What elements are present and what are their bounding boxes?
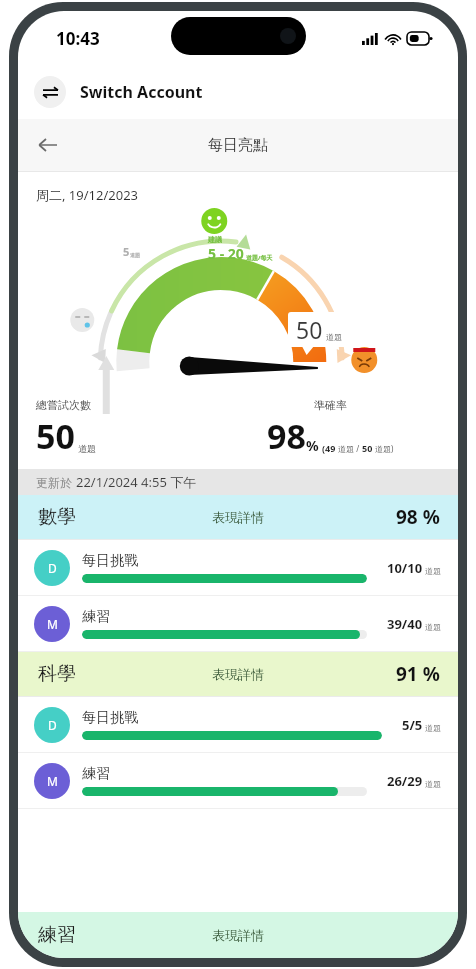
staticText: 每日挑戰: [82, 709, 138, 727]
staticText: 練習: [38, 923, 76, 947]
staticText: 道題): [373, 443, 394, 454]
staticText: 22/1/2024 4:55 下午: [76, 473, 197, 491]
staticText: 道題/每天: [246, 254, 273, 262]
staticText: 總嘗試次數: [36, 398, 91, 412]
button[interactable]: D: [18, 540, 458, 595]
staticText: 50: [362, 442, 373, 454]
staticText: M: [47, 616, 58, 632]
staticText: 表現詳情: [212, 927, 264, 943]
staticText: 道題: [423, 778, 442, 789]
staticText: 50: [296, 314, 323, 345]
staticText: 練習: [82, 608, 110, 626]
staticText: 周二, 19/12/2023: [36, 186, 139, 204]
staticText: 10/10: [387, 559, 423, 577]
staticText: 道題: [423, 722, 442, 733]
staticText: 5: [123, 244, 130, 259]
button[interactable]: 數學: [18, 495, 458, 539]
button[interactable]: Switch Account: [18, 65, 458, 119]
staticText: 91 %: [396, 661, 440, 687]
button[interactable]: Back: [26, 123, 70, 167]
staticText: 更新於: [36, 474, 76, 490]
staticText: 科學: [38, 662, 76, 686]
staticText: D: [48, 560, 57, 576]
button[interactable]: M: [18, 596, 458, 651]
staticText: 39/40: [387, 615, 423, 633]
staticText: Switch Account: [80, 81, 203, 103]
staticText: 5/5: [402, 716, 423, 734]
staticText: 準確率: [314, 398, 347, 412]
staticText: 50: [36, 413, 75, 459]
staticText: 建議: [208, 235, 222, 244]
button[interactable]: D: [18, 697, 458, 752]
staticText: 數學: [38, 505, 76, 529]
staticText: 練習: [82, 765, 110, 783]
staticText: 98: [267, 413, 306, 459]
staticText: 每日亮點: [208, 136, 268, 155]
button[interactable]: 科學: [18, 652, 458, 696]
staticText: 10:43: [56, 27, 100, 50]
staticText: 表現詳情: [212, 509, 264, 525]
staticText: 道題 /: [336, 443, 362, 454]
button[interactable]: M: [18, 753, 458, 808]
staticText: M: [47, 773, 58, 789]
staticText: D: [48, 717, 57, 733]
staticText: 98 %: [396, 504, 440, 530]
staticText: (49: [322, 442, 336, 454]
staticText: 道題: [130, 252, 140, 258]
staticText: 道題: [326, 332, 342, 342]
staticText: 5 - 20: [208, 244, 244, 263]
staticText: %: [306, 436, 319, 455]
staticText: 道題: [78, 443, 96, 454]
staticText: 道題: [423, 565, 442, 576]
staticText: 道題: [423, 621, 442, 632]
staticText: 每日挑戰: [82, 552, 138, 570]
staticText: 表現詳情: [212, 666, 264, 682]
button[interactable]: 練習: [18, 912, 458, 958]
staticText: 26/29: [387, 772, 423, 790]
